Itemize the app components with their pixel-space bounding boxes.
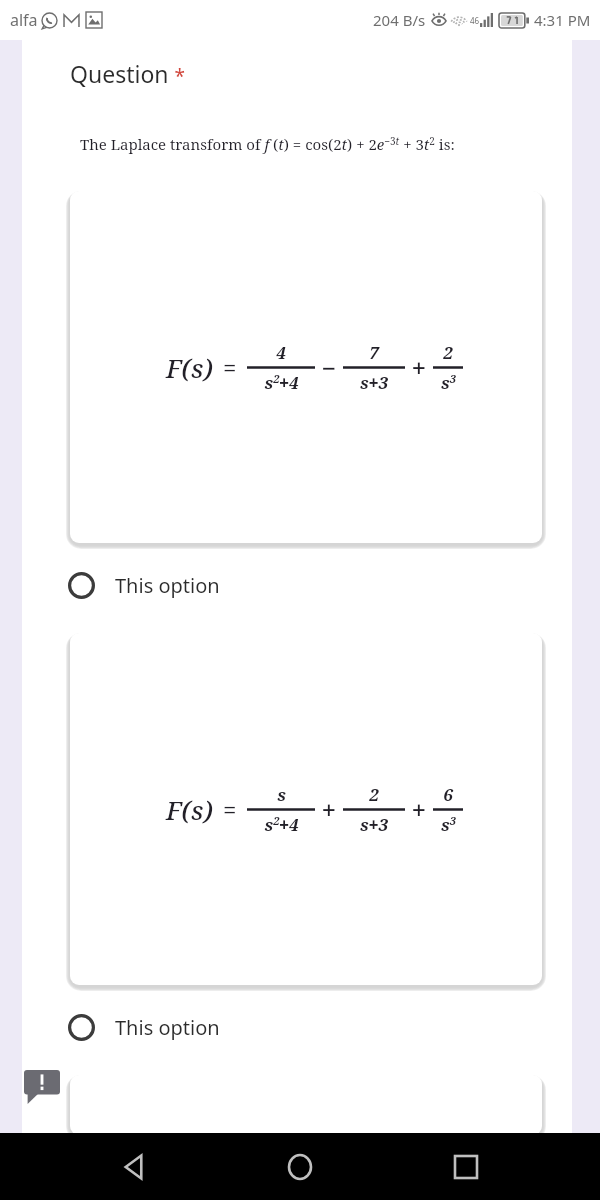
button[interactable] (70, 1075, 542, 1135)
staticText: F(s) (166, 350, 213, 385)
button[interactable]: F(s) (70, 633, 542, 985)
button[interactable]: Home (268, 1135, 332, 1199)
staticText: = (223, 793, 237, 826)
staticText: 2 (443, 341, 453, 364)
staticText: F(s) (166, 792, 213, 827)
staticText: − (322, 351, 336, 384)
button[interactable]: Warning (24, 1070, 60, 1104)
staticText: 6 (443, 783, 453, 806)
staticText: + (412, 351, 426, 384)
staticText: s+3 (360, 813, 388, 836)
staticText: 4 (276, 341, 286, 364)
button[interactable]: This option (58, 559, 542, 611)
staticText: s (277, 783, 286, 806)
button[interactable]: Back (102, 1135, 166, 1199)
staticText: s2+4 (264, 813, 299, 836)
staticText: alfa (10, 9, 38, 31)
staticText: = (223, 351, 237, 384)
staticText: s3 (441, 813, 456, 836)
button[interactable]: F(s) (70, 191, 542, 543)
staticText: 4:31 PM (534, 10, 591, 30)
button[interactable]: This option (58, 1001, 542, 1053)
staticText: 2 (369, 783, 379, 806)
staticText: Question * (70, 58, 185, 89)
staticText: This option (115, 1014, 220, 1041)
staticText: 7 (369, 341, 379, 364)
staticText: + (412, 793, 426, 826)
staticText: This option (115, 572, 220, 599)
staticText: 204 B/s (373, 10, 426, 30)
staticText: The Laplace transform of f (t) = cos(2t)… (80, 134, 455, 154)
staticText: + (322, 793, 336, 826)
staticText: s2+4 (264, 371, 299, 394)
staticText: s+3 (360, 371, 388, 394)
staticText: s3 (441, 371, 456, 394)
staticText: 46 (470, 15, 480, 26)
button[interactable]: Recent apps (434, 1135, 498, 1199)
